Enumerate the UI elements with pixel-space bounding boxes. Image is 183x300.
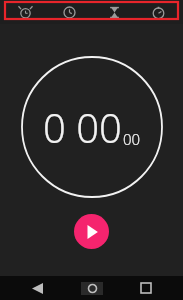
button[interactable]: Recents bbox=[128, 276, 164, 300]
button[interactable]: Alarm bbox=[5, 0, 45, 24]
button[interactable]: Timer bbox=[94, 0, 134, 24]
button[interactable]: Start bbox=[74, 214, 109, 249]
button[interactable]: Home bbox=[74, 276, 110, 300]
button[interactable]: Back bbox=[19, 276, 55, 300]
button[interactable]: Clock bbox=[49, 0, 89, 24]
button[interactable]: Stopwatch bbox=[138, 0, 178, 24]
staticText: 0 00 bbox=[43, 100, 122, 154]
staticText: 00 bbox=[123, 129, 141, 149]
